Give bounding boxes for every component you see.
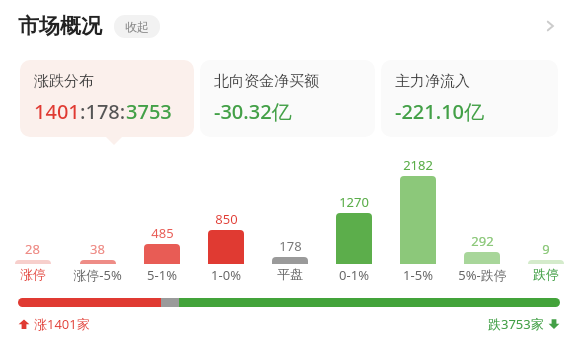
staticText: 1-0% bbox=[211, 266, 241, 284]
button[interactable]: 38 bbox=[65, 150, 130, 264]
staticText: :178: bbox=[80, 98, 126, 125]
staticText: 市场概况 bbox=[18, 13, 102, 39]
staticText: 1401 bbox=[34, 98, 80, 125]
button[interactable]: 850 bbox=[194, 150, 258, 264]
staticText: 5-1% bbox=[147, 266, 177, 284]
button[interactable]: 涨跌分布 bbox=[20, 60, 194, 137]
staticText: 5%-跌停 bbox=[458, 266, 507, 284]
button[interactable]: 北向资金净买额 bbox=[200, 60, 375, 137]
staticText: 2182 bbox=[403, 156, 433, 174]
button[interactable]: 9 bbox=[514, 150, 578, 264]
staticText: 38 bbox=[90, 240, 105, 258]
staticText: 1270 bbox=[339, 193, 369, 211]
staticText: 涨停 bbox=[20, 266, 46, 282]
button[interactable]: 178 bbox=[258, 150, 322, 264]
staticText: 3753 bbox=[126, 98, 172, 125]
button[interactable]: 2182 bbox=[386, 150, 450, 264]
button[interactable]: 292 bbox=[450, 150, 514, 264]
staticText: 292 bbox=[471, 232, 494, 250]
staticText: 涨跌分布 bbox=[34, 72, 94, 91]
staticText: 跌3753家 bbox=[488, 315, 544, 333]
staticText: 收起 bbox=[125, 19, 149, 34]
staticText: -221.10亿 bbox=[395, 98, 485, 125]
button[interactable]: 主力净流入 bbox=[381, 60, 558, 137]
staticText: 涨1401家 bbox=[34, 315, 90, 333]
staticText: 0-1% bbox=[339, 266, 369, 284]
button[interactable]: 1270 bbox=[322, 150, 386, 264]
staticText: 涨停-5% bbox=[73, 266, 122, 284]
staticText: 178 bbox=[279, 237, 302, 255]
staticText: 485 bbox=[151, 224, 174, 242]
staticText: 主力净流入 bbox=[395, 72, 470, 91]
staticText: 850 bbox=[215, 210, 238, 228]
button[interactable]: 28 bbox=[0, 150, 65, 264]
staticText: 9 bbox=[542, 240, 550, 258]
staticText: 28 bbox=[25, 240, 40, 258]
staticText: 1-5% bbox=[403, 266, 433, 284]
button[interactable]: 485 bbox=[130, 150, 194, 264]
button[interactable]: More bbox=[530, 6, 570, 46]
staticText: 平盘 bbox=[277, 266, 303, 282]
staticText: 北向资金净买额 bbox=[214, 72, 319, 91]
staticText: 跌停 bbox=[533, 266, 559, 282]
button[interactable]: 收起 bbox=[114, 15, 160, 38]
staticText: -30.32亿 bbox=[214, 98, 292, 125]
